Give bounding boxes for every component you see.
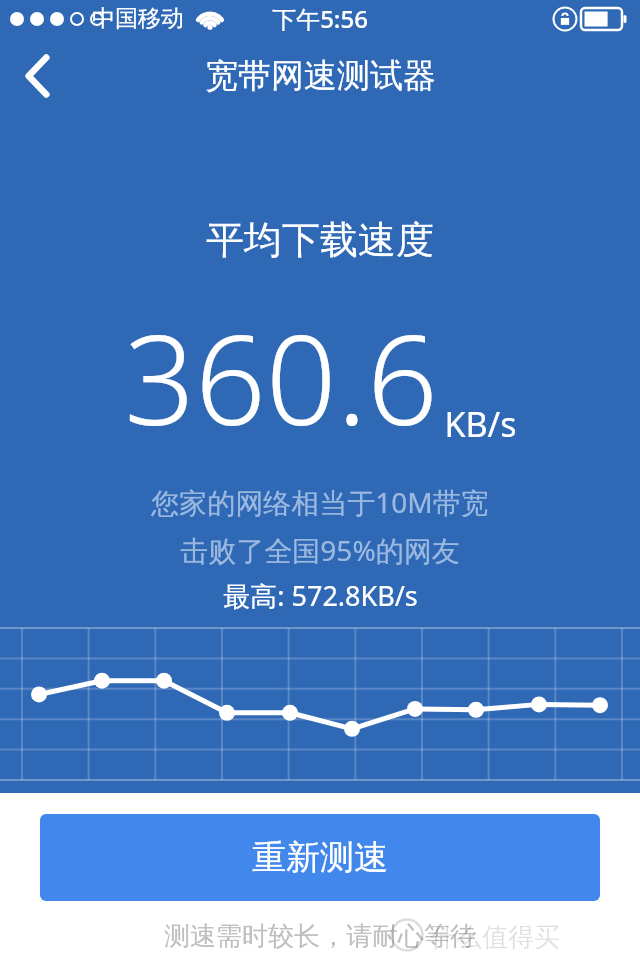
staticText: 宽带网速测试器 — [205, 55, 436, 97]
staticText: KB/s — [444, 401, 517, 447]
button[interactable]: 重新测速 — [40, 814, 600, 901]
staticText: 什么值得买 — [430, 921, 560, 954]
staticText: 平均下载速度 — [206, 216, 434, 264]
staticText: 下午5:56 — [272, 2, 368, 35]
staticText: 中国移动 — [92, 4, 184, 33]
staticText: 击败了全国95%的网友 — [180, 531, 460, 569]
staticText: 重新测速 — [252, 836, 388, 879]
button[interactable]: 返回 — [0, 38, 76, 114]
staticText: 您家的网络相当于10M带宽 — [151, 483, 489, 521]
staticText: 最高: 572.8KB/s — [223, 577, 418, 614]
staticText: 360.6 — [124, 292, 438, 461]
staticText: 测速需时较长，请耐心等待 — [164, 920, 476, 953]
